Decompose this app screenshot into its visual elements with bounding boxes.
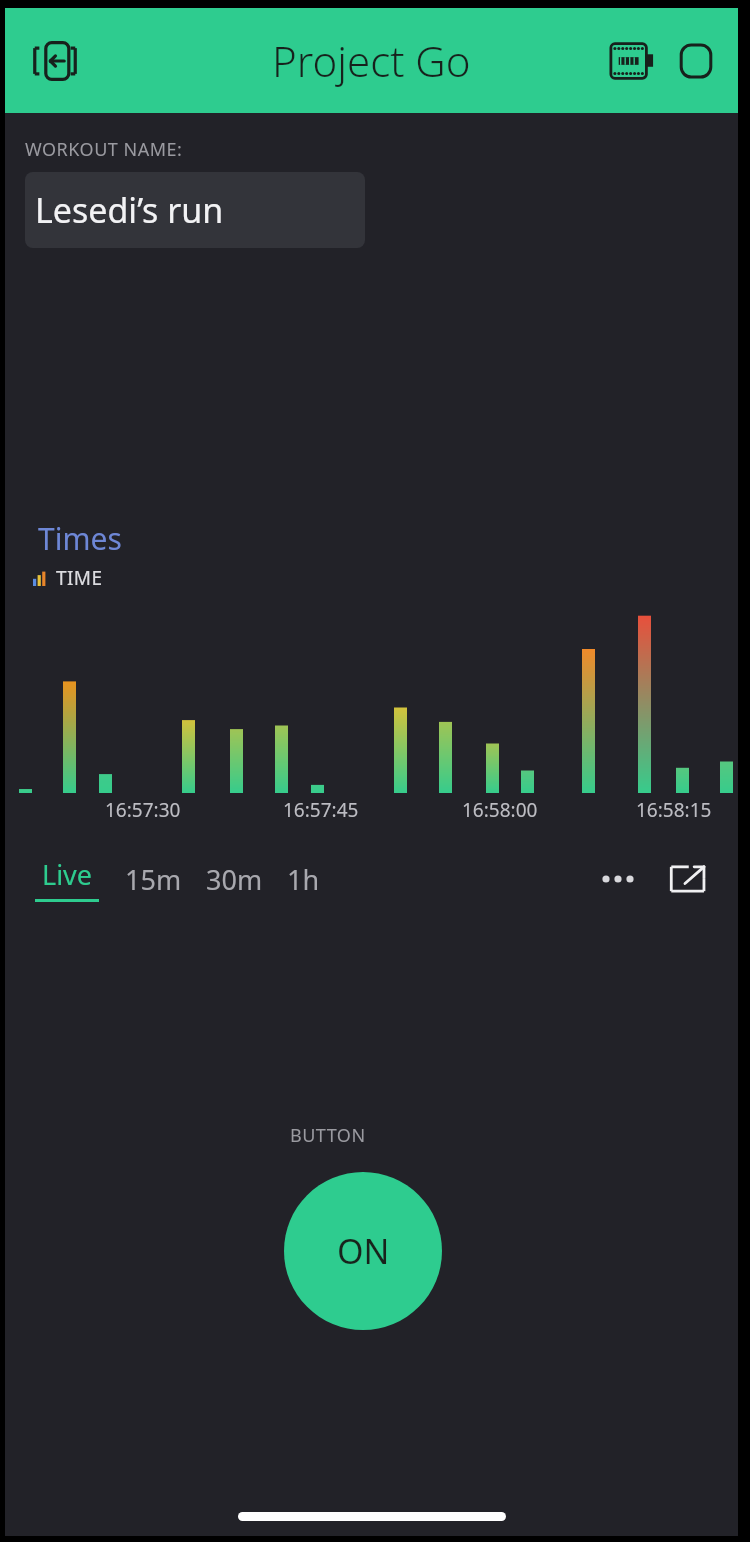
staticText: Times — [38, 518, 122, 559]
staticText: 16:57:45 — [283, 797, 359, 823]
staticText: 30m — [206, 861, 263, 898]
staticText: ON — [337, 1228, 390, 1274]
button[interactable]: Live — [35, 856, 99, 902]
button[interactable]: Exit — [23, 29, 87, 93]
staticText: Project Go — [272, 32, 471, 89]
button[interactable]: 30m — [198, 861, 271, 898]
staticText: 16:57:30 — [105, 797, 181, 823]
button[interactable]: Open in new window — [662, 853, 714, 905]
staticText: 16:58:15 — [636, 797, 712, 823]
staticText: TIME — [56, 565, 103, 591]
staticText: Lesedi’s run — [35, 187, 224, 233]
button[interactable]: 1h — [279, 861, 328, 898]
button[interactable]: Screen — [664, 29, 728, 93]
button[interactable]: 15m — [117, 861, 190, 898]
staticText: 16:58:00 — [462, 797, 538, 823]
button[interactable]: More options — [592, 853, 644, 905]
staticText: 15m — [125, 861, 182, 898]
staticText: BUTTON — [290, 1123, 366, 1148]
button[interactable]: Lesedi’s run — [25, 172, 365, 248]
staticText: 1h — [287, 861, 320, 898]
staticText: WORKOUT NAME: — [25, 137, 183, 162]
button[interactable]: ON — [284, 1172, 442, 1330]
button[interactable]: Device — [600, 29, 664, 93]
staticText: Live — [42, 856, 93, 893]
